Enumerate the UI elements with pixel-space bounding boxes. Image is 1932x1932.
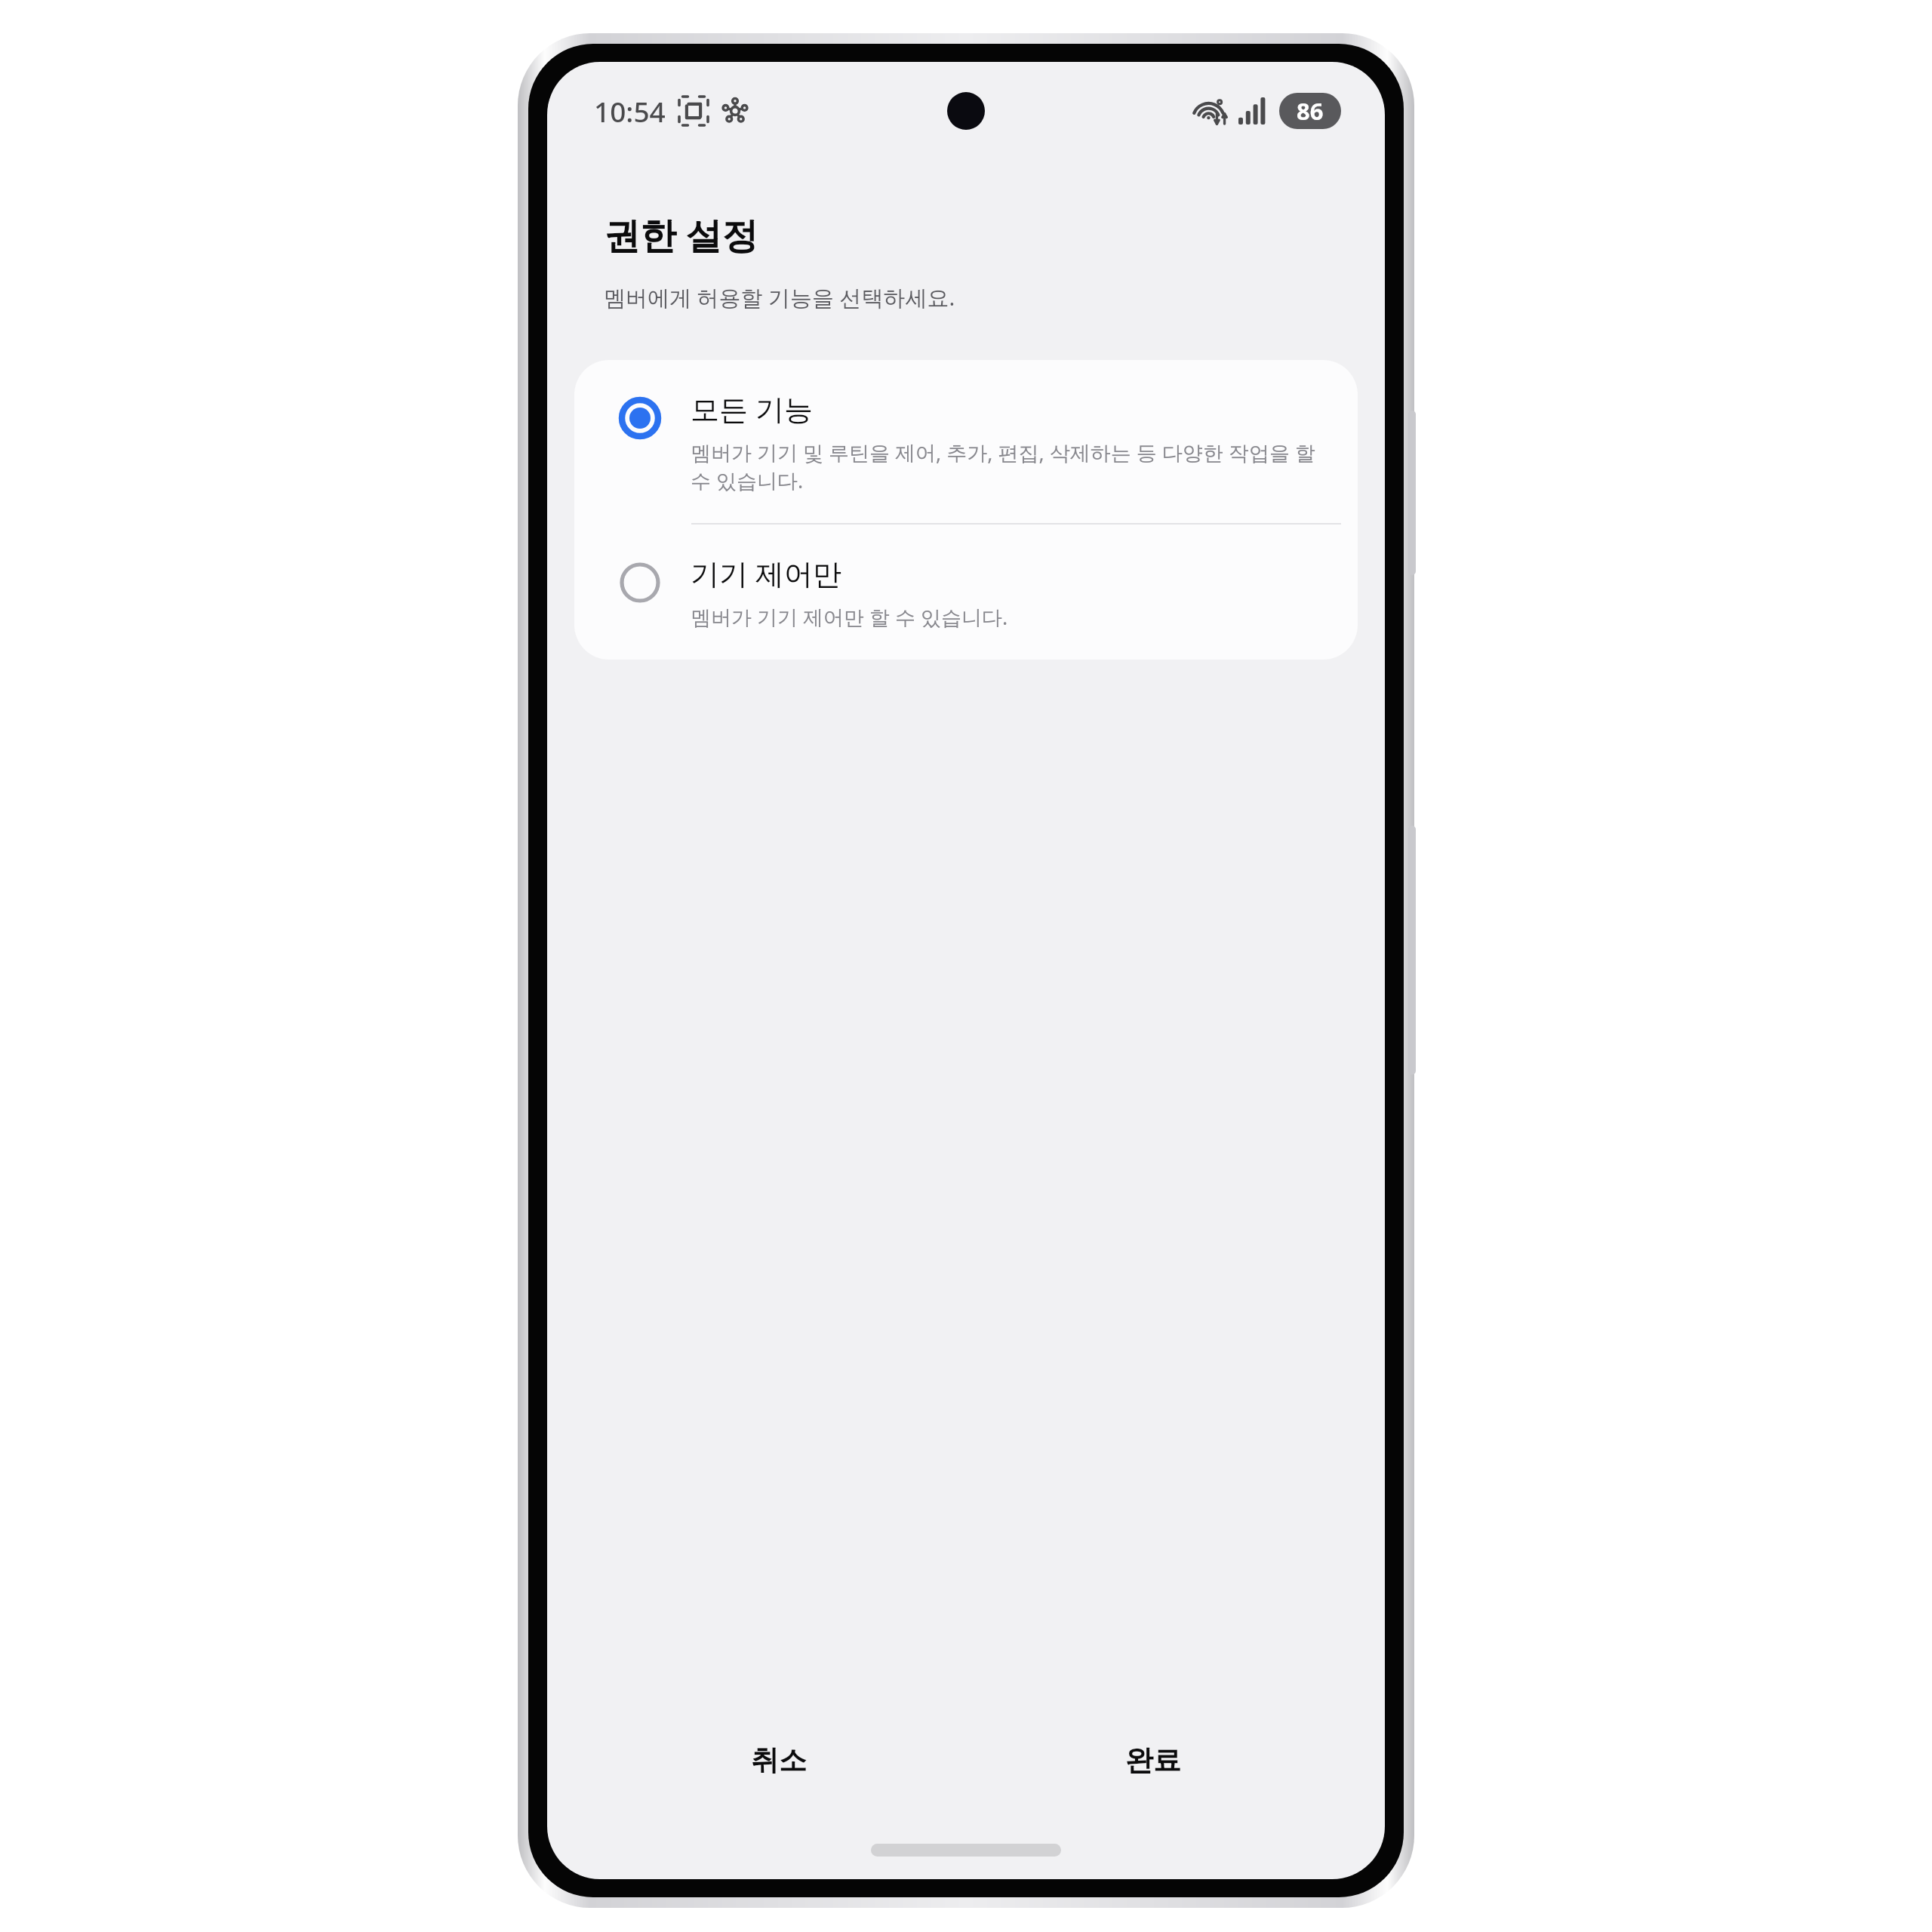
button[interactable]: 모든 기능 bbox=[574, 360, 1358, 523]
staticText: 기기 제어만 bbox=[691, 553, 841, 592]
staticText: 10:54 bbox=[594, 92, 666, 130]
button[interactable]: 취소 bbox=[635, 1724, 922, 1796]
staticText: 권한 설정 bbox=[604, 210, 758, 260]
button[interactable]: 완료 bbox=[1010, 1724, 1297, 1796]
staticText: 멤버가 기기 제어만 할 수 있습니다. bbox=[691, 603, 1008, 631]
staticText: 완료 bbox=[1125, 1743, 1181, 1778]
button[interactable]: 기기 제어만 bbox=[574, 525, 1358, 660]
staticText: 멤버에게 허용할 기능을 선택하세요. bbox=[604, 282, 955, 312]
staticText: 취소 bbox=[751, 1743, 807, 1778]
staticText: 86 bbox=[1297, 95, 1324, 127]
staticText: 멤버가 기기 및 루틴을 제어, 추가, 편집, 삭제하는 등 다양한 작업을 … bbox=[691, 438, 1332, 494]
staticText: 모든 기능 bbox=[691, 389, 813, 428]
